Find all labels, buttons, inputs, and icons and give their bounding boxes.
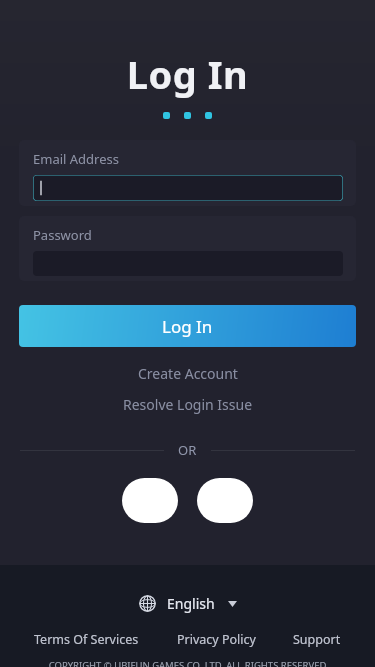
staticText: OR [178, 441, 197, 459]
staticText: Create Account [138, 364, 238, 383]
button[interactable]: Resolve Login Issue [0, 392, 375, 417]
staticText: Log In [0, 48, 375, 100]
button[interactable]: Log In [19, 305, 356, 347]
staticText: Password [33, 226, 92, 244]
staticText: Privacy Policy [177, 631, 256, 648]
button[interactable]: Sign in with Google [197, 478, 253, 523]
staticText: Log In [162, 315, 213, 338]
button[interactable]: Privacy Policy [173, 629, 260, 650]
button[interactable] [33, 175, 343, 201]
staticText: COPYRIGHT © UBIFUN GAMES CO.,LTD. ALL RI… [0, 659, 375, 667]
staticText: Resolve Login Issue [123, 395, 253, 414]
staticText: Support [293, 631, 341, 648]
button[interactable]: Create Account [0, 361, 375, 386]
button[interactable]: English [133, 591, 243, 616]
staticText: Email Address [33, 150, 119, 168]
staticText: English [167, 594, 215, 613]
button[interactable]: Sign in with Facebook [122, 478, 178, 523]
staticText: Terms Of Services [34, 631, 139, 648]
button[interactable]: Terms Of Services [30, 629, 143, 650]
button[interactable]: Support [289, 629, 345, 650]
